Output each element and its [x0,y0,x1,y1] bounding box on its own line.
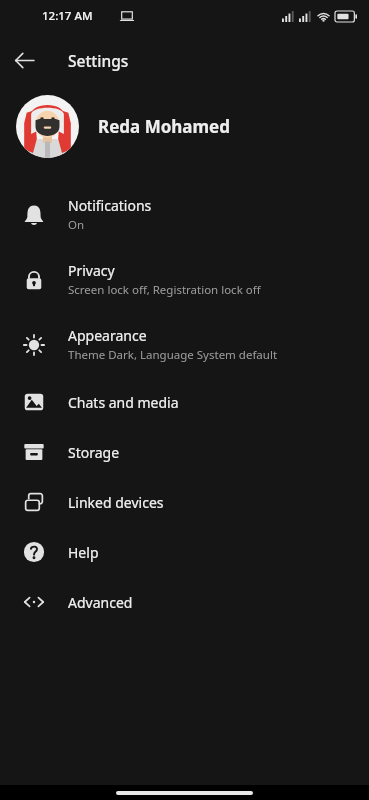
staticText: 12:17 AM [42,8,93,24]
button[interactable]: Appearance [0,312,369,377]
button[interactable]: Privacy [0,247,369,312]
staticText: Notifications [68,196,152,215]
staticText: Appearance [68,326,147,345]
staticText: Storage [68,443,120,462]
staticText: Screen lock off, Registration lock off [68,282,261,298]
button[interactable]: Chats and media [0,377,369,427]
staticText: Reda Mohamed [98,115,231,138]
staticText: Help [68,543,99,562]
button[interactable]: Advanced [0,577,369,627]
button[interactable]: Notifications [0,182,369,247]
button[interactable]: Linked devices [0,477,369,527]
staticText: Advanced [68,593,133,612]
button[interactable]: Back [4,40,44,80]
staticText: On [68,217,85,233]
staticText: Privacy [68,261,115,280]
staticText: Chats and media [68,393,179,412]
staticText: Linked devices [68,493,164,512]
staticText: Theme Dark, Language System default [68,347,278,363]
button[interactable]: Help [0,527,369,577]
button[interactable]: Storage [0,427,369,477]
button[interactable]: Reda Mohamed [0,88,369,164]
staticText: Settings [68,50,129,71]
